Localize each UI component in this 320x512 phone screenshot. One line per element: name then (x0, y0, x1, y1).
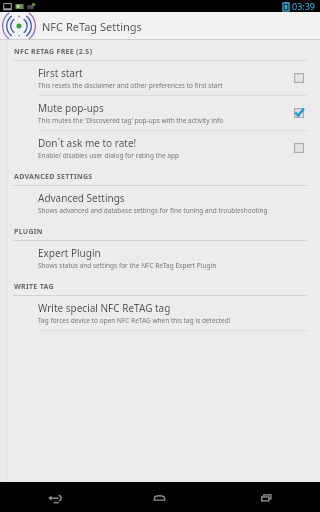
staticText: Enable/ disables user dialog for rating … (38, 151, 179, 160)
button[interactable]: Expert Plugin (0, 241, 320, 275)
button[interactable]: Write special NFC ReTAG tag (0, 296, 320, 330)
staticText: This mutes the 'Discovered tag' pop-ups … (38, 116, 224, 125)
staticText: 03:39 (292, 0, 316, 12)
staticText: Write special NFC ReTAG tag (38, 301, 171, 315)
staticText: Shows advanced and database settings for… (38, 206, 268, 215)
staticText: NFC RETAG FREE (2.5) (14, 47, 93, 57)
staticText: Tag forces device to open NFC ReTAG when… (38, 316, 231, 325)
button[interactable]: First start (0, 61, 320, 95)
staticText: Advanced Settings (38, 191, 125, 205)
staticText: Shows status and settings for the NFC Re… (38, 261, 217, 270)
staticText: Mute pop-ups (38, 101, 104, 115)
button[interactable]: Unchecked (290, 69, 308, 87)
staticText: Expert Plugin (38, 246, 101, 260)
staticText: This resets the disclaimer and other pre… (38, 81, 223, 90)
button[interactable]: Recent apps (213, 482, 320, 512)
button[interactable]: Don´t ask me to rate! (0, 131, 320, 165)
staticText: NFC ReTag Settings (42, 19, 142, 34)
staticText: WRITE TAG (14, 282, 54, 292)
button[interactable]: Checked (290, 104, 308, 122)
button[interactable]: Advanced Settings (0, 186, 320, 220)
staticText: ADVANCED SETTINGS (14, 172, 93, 182)
button[interactable]: Mute pop-ups (0, 96, 320, 130)
staticText: First start (38, 66, 83, 80)
staticText: PLUGIN (14, 227, 43, 237)
button[interactable]: Back (0, 482, 106, 512)
button[interactable]: Unchecked (290, 139, 308, 157)
staticText: Don´t ask me to rate! (38, 136, 137, 150)
button[interactable]: Home (106, 482, 213, 512)
